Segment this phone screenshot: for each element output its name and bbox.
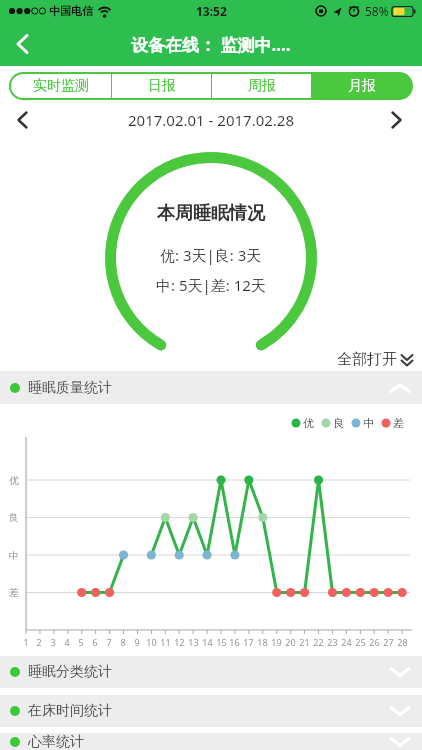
staticText: 9 (134, 636, 140, 648)
staticText: 中 (363, 416, 374, 430)
staticText: 58% (365, 3, 389, 19)
button[interactable]: 日报 (112, 74, 211, 98)
staticText: 差 (393, 416, 404, 430)
button[interactable]: 实时监测 (11, 74, 111, 98)
button[interactable] (0, 22, 44, 66)
staticText: 10 (146, 636, 157, 648)
staticText: 5 (78, 636, 84, 648)
staticText: 1 (23, 636, 29, 648)
staticText: 13 (188, 636, 199, 648)
button[interactable]: 全部打开 (0, 348, 422, 371)
staticText: 实时监测 (33, 77, 89, 95)
staticText: 中国电信 (49, 4, 93, 18)
staticText: 日报 (148, 77, 176, 95)
staticText: 21 (299, 636, 310, 648)
staticText: 优 (303, 416, 314, 430)
staticText: 13:52 (196, 3, 227, 19)
staticText: 良 (333, 416, 344, 430)
staticText: 28 (397, 636, 408, 648)
staticText: 差 (9, 586, 19, 599)
staticText: 在床时间统计 (28, 702, 112, 720)
staticText: 全部打开 (337, 350, 397, 369)
button[interactable] (8, 106, 36, 134)
staticText: 周报 (248, 77, 276, 95)
staticText: 17 (243, 636, 254, 648)
staticText: 2 (36, 636, 42, 648)
staticText: 设备在线： 监测中.... (131, 33, 291, 56)
staticText: 19 (271, 636, 282, 648)
staticText: 8 (120, 636, 126, 648)
staticText: 12 (174, 636, 185, 648)
staticText: 优 (9, 474, 19, 487)
staticText: 睡眠分类统计 (28, 663, 112, 681)
staticText: 14 (202, 636, 213, 648)
staticText: 22 (313, 636, 324, 648)
button[interactable] (382, 106, 410, 134)
staticText: 23 (327, 636, 338, 648)
button[interactable]: 睡眠质量统计 (0, 371, 422, 404)
staticText: 27 (383, 636, 394, 648)
button[interactable]: 周报 (212, 74, 311, 98)
staticText: 睡眠质量统计 (28, 379, 112, 397)
staticText: 优: 3天|良: 3天 (160, 245, 262, 265)
staticText: 中: 5天|差: 12天 (156, 275, 266, 295)
staticText: 24 (341, 636, 352, 648)
staticText: 18 (257, 636, 268, 648)
staticText: 3 (50, 636, 56, 648)
staticText: 2017.02.01 - 2017.02.28 (128, 110, 294, 130)
staticText: 4 (64, 636, 70, 648)
staticText: 16 (229, 636, 240, 648)
staticText: 20 (285, 636, 296, 648)
staticText: 11 (160, 636, 171, 648)
button[interactable]: 月报 (312, 74, 411, 98)
button[interactable]: 睡眠分类统计 (0, 656, 422, 688)
staticText: 月报 (348, 77, 376, 95)
staticText: 心率统计 (28, 733, 84, 750)
staticText: 15 (216, 636, 227, 648)
staticText: 25 (355, 636, 366, 648)
staticText: 中 (9, 549, 19, 562)
staticText: 7 (106, 636, 112, 648)
staticText: 良 (9, 511, 19, 524)
staticText: 26 (369, 636, 380, 648)
button[interactable]: 心率统计 (0, 733, 422, 750)
button[interactable]: 在床时间统计 (0, 695, 422, 727)
staticText: 本周睡眠情况 (157, 202, 265, 225)
staticText: 6 (92, 636, 98, 648)
